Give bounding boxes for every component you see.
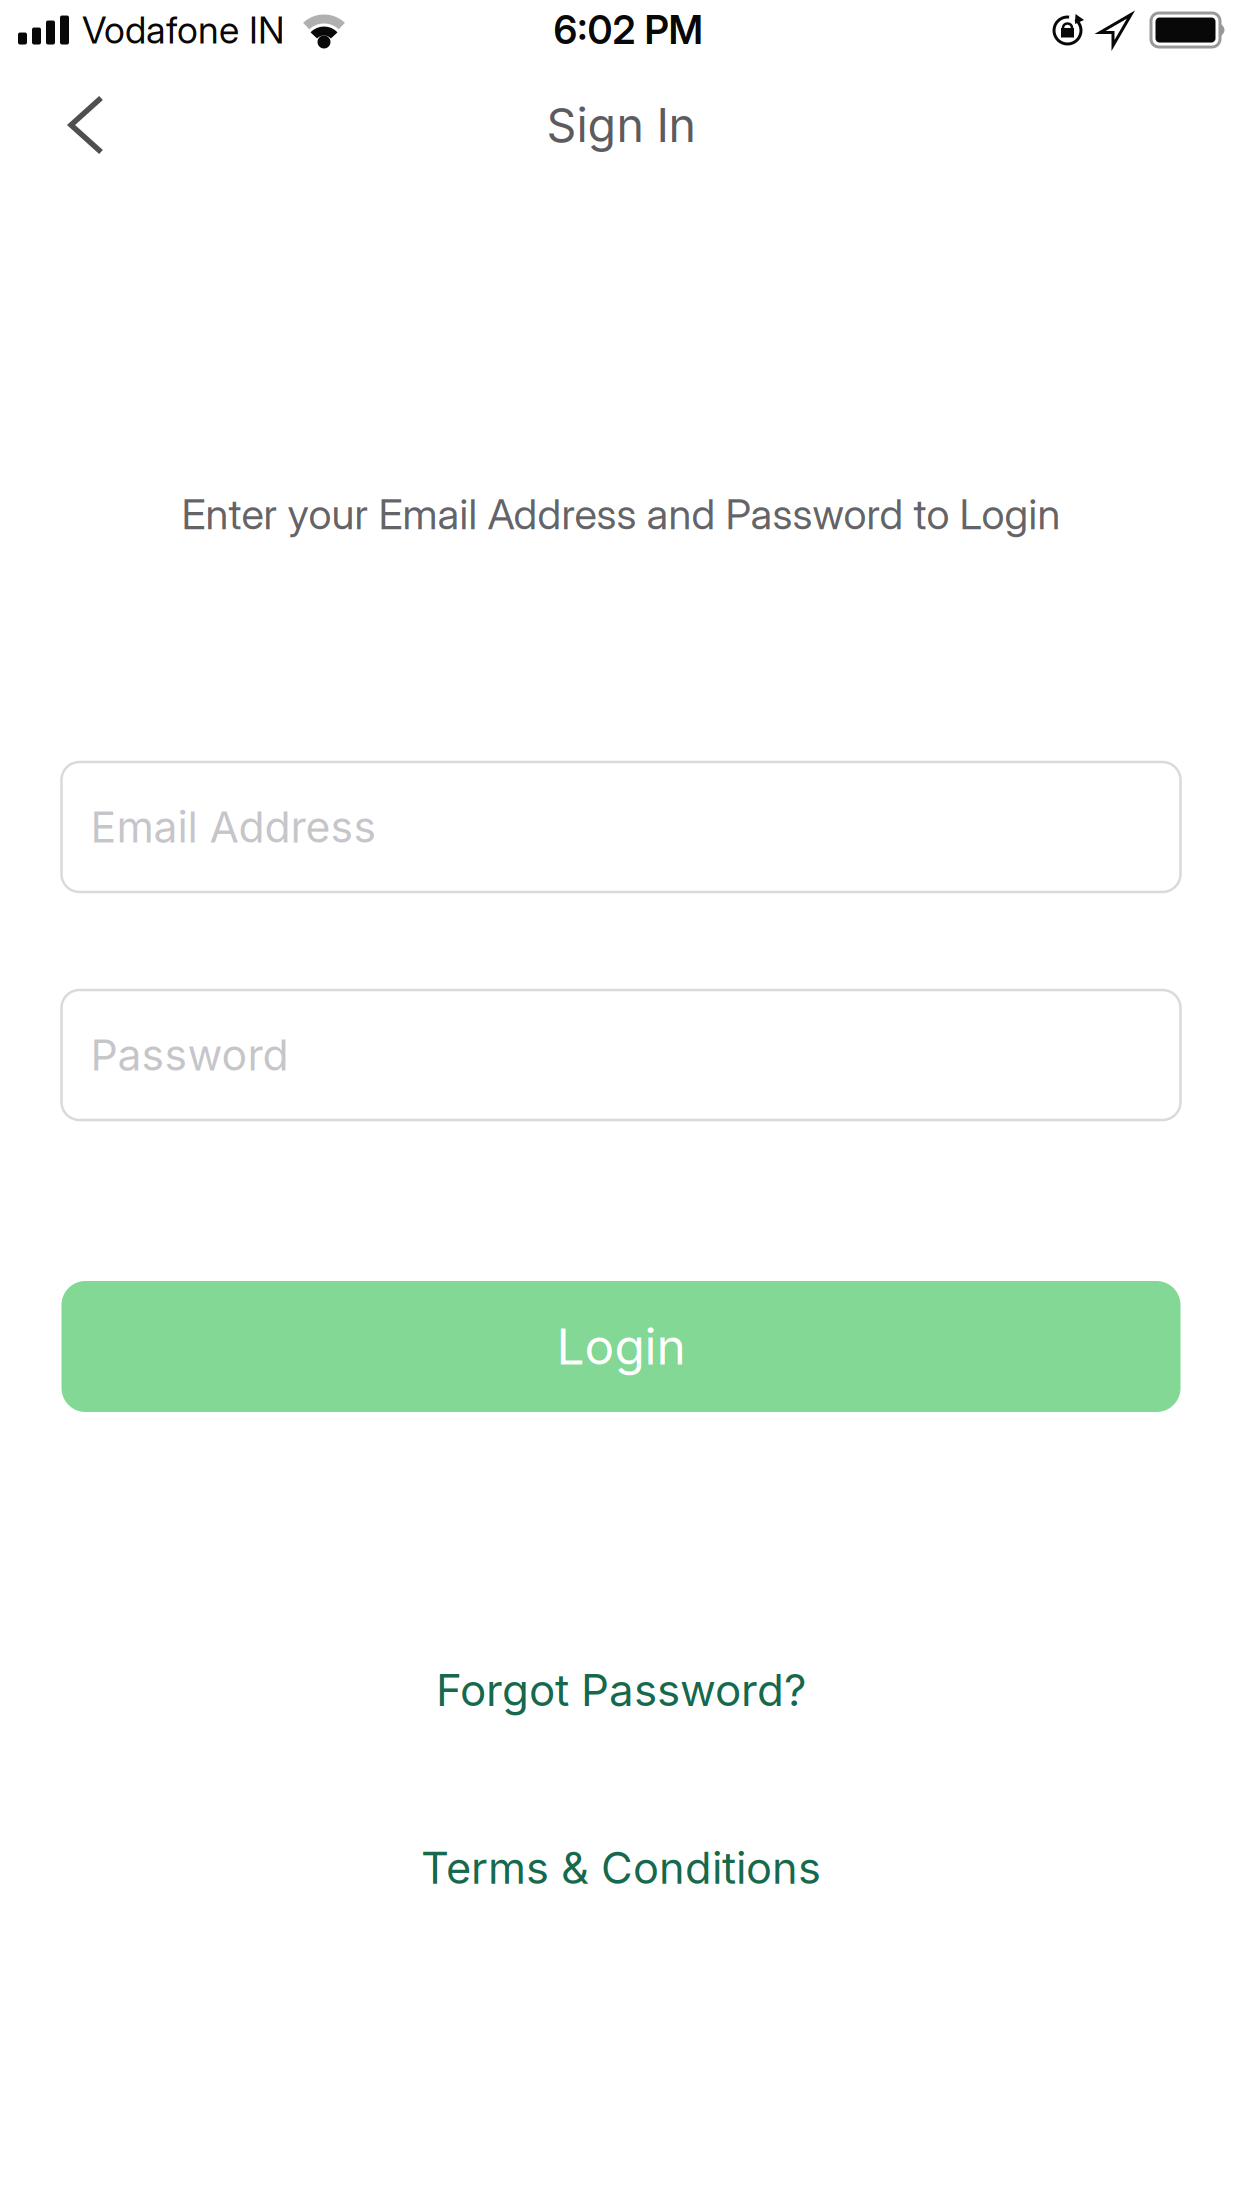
staticText: Email Address	[90, 801, 376, 853]
staticText: Enter your Email Address and Password to…	[181, 489, 1060, 539]
staticText: Terms & Conditions	[421, 1842, 821, 1894]
staticText: Forgot Password?	[436, 1663, 806, 1717]
button[interactable]: Terms & Conditions	[421, 1833, 821, 1903]
button[interactable]: Password	[61, 990, 1180, 1120]
staticText: Sign In	[546, 97, 695, 153]
button[interactable]: Email Address	[61, 762, 1180, 892]
staticText: Vodafone IN	[82, 8, 285, 52]
staticText: Login	[556, 1316, 685, 1376]
staticText: Password	[90, 1029, 288, 1081]
button[interactable]: Forgot Password?	[436, 1655, 806, 1725]
button[interactable]: Login	[61, 1281, 1180, 1412]
button[interactable]	[0, 78, 141, 172]
staticText: 6:02 PM	[553, 6, 702, 53]
